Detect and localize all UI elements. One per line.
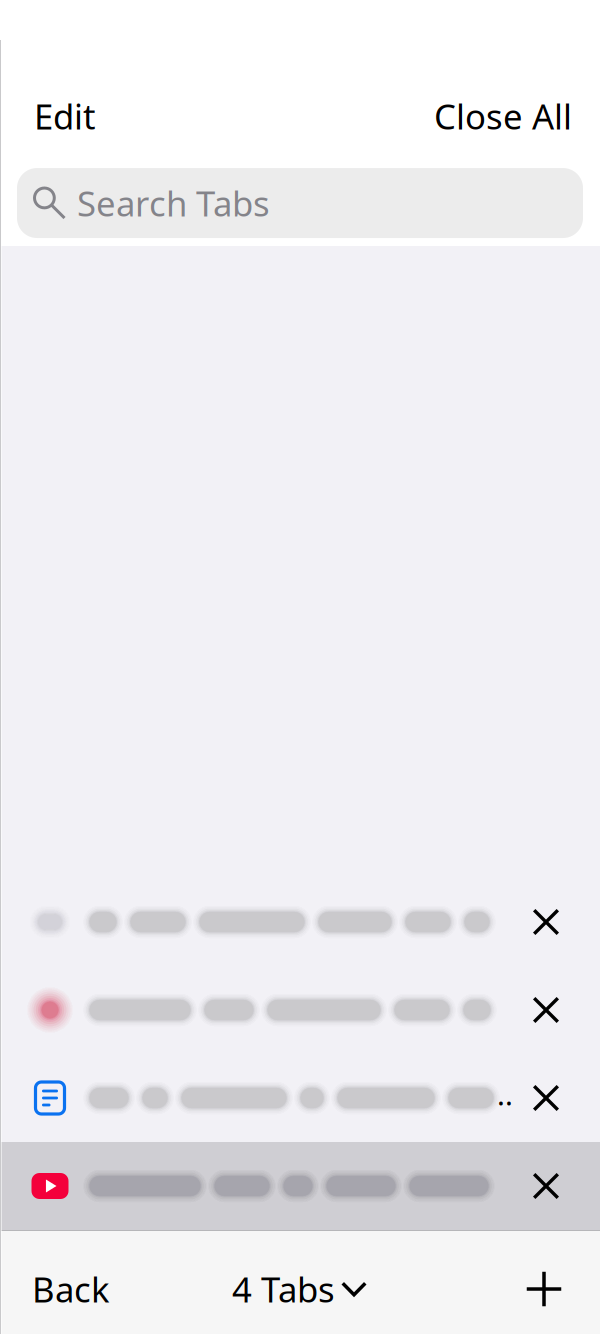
staticText: .. xyxy=(497,1074,513,1113)
button[interactable]: Search Tabs xyxy=(17,168,583,238)
staticText: Search Tabs xyxy=(77,180,270,226)
button[interactable]: Close All xyxy=(426,83,580,149)
button[interactable]: Back xyxy=(22,1250,120,1328)
button[interactable]: 4 Tabs xyxy=(222,1250,377,1328)
button[interactable]: Tab xyxy=(0,878,600,966)
button[interactable]: Tab xyxy=(0,1142,600,1230)
staticText: 4 Tabs xyxy=(232,1266,335,1312)
staticText: Back xyxy=(32,1266,110,1312)
button[interactable]: New Tab xyxy=(515,1260,573,1318)
button[interactable]: Edit xyxy=(26,83,104,149)
button[interactable]: Tab xyxy=(0,1054,600,1142)
staticText: Close All xyxy=(434,93,572,139)
button[interactable]: Tab xyxy=(0,966,600,1054)
staticText: Edit xyxy=(34,93,96,139)
